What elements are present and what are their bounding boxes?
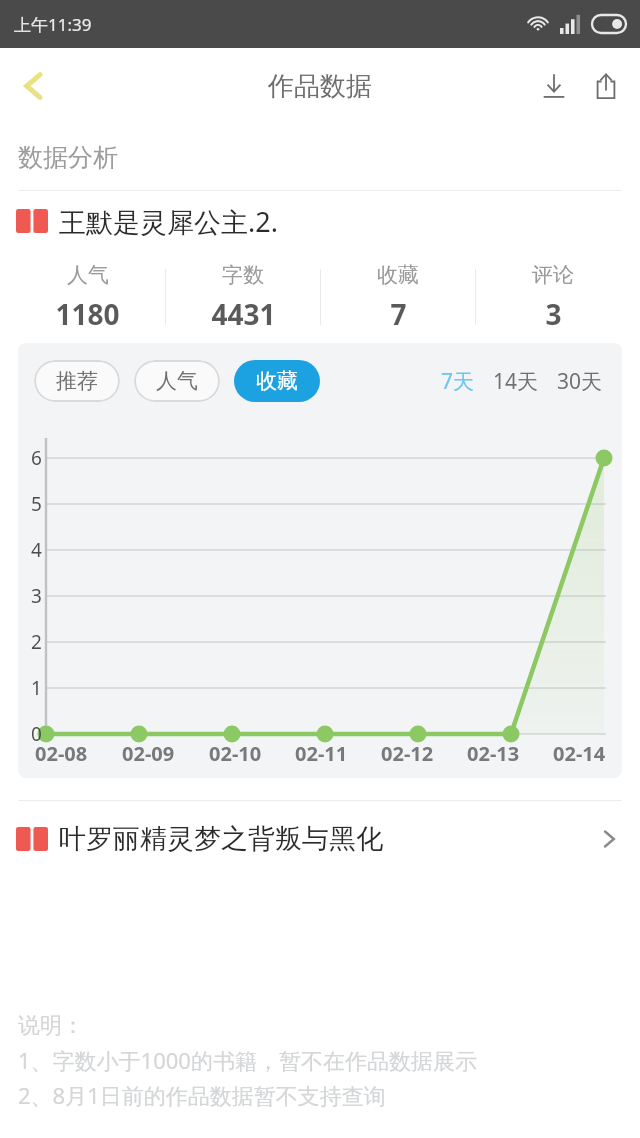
staticText: 评论	[532, 262, 574, 288]
staticText: 3	[545, 295, 562, 333]
button[interactable]: 推荐	[34, 360, 120, 402]
staticText: 3	[31, 583, 42, 609]
button[interactable]: Download	[528, 60, 580, 112]
button[interactable]: 王默是灵犀公主.2.	[0, 191, 640, 251]
staticText: 收藏	[256, 368, 298, 394]
staticText: 02-14	[553, 740, 606, 767]
staticText: 02-08	[35, 740, 88, 767]
button[interactable]: 叶罗丽精灵梦之背叛与黑化	[0, 801, 640, 877]
staticText: 02-10	[209, 740, 262, 767]
staticText: 02-13	[467, 740, 520, 767]
button[interactable]: 字数	[166, 262, 320, 333]
staticText: 4	[31, 537, 42, 563]
button[interactable]: Back	[6, 58, 62, 114]
staticText: 说明：	[18, 1012, 84, 1040]
staticText: 0	[31, 721, 42, 747]
staticText: 数据分析	[18, 142, 118, 173]
staticText: 1、字数小于1000的书籍，暂不在作品数据展示	[18, 1045, 477, 1075]
button[interactable]: 收藏	[234, 360, 320, 402]
staticText: 4431	[211, 295, 276, 333]
staticText: 7	[390, 295, 407, 333]
staticText: 14天	[493, 367, 539, 396]
button[interactable]: 人气	[134, 360, 220, 402]
staticText: 2、8月1日前的作品数据暂不支持查询	[18, 1080, 386, 1110]
staticText: 6	[31, 445, 42, 471]
staticText: 上午11:39	[14, 13, 92, 36]
button[interactable]: 14天	[490, 367, 542, 396]
staticText: 5	[31, 491, 42, 517]
staticText: 收藏	[377, 262, 419, 288]
button[interactable]: 30天	[554, 367, 606, 396]
button[interactable]: 7天	[438, 367, 478, 396]
staticText: 1	[31, 675, 42, 701]
button[interactable]: 评论	[476, 262, 630, 333]
staticText: 人气	[67, 262, 109, 288]
button[interactable]: 收藏	[321, 262, 475, 333]
staticText: 1180	[55, 295, 120, 333]
staticText: 人气	[156, 368, 198, 394]
staticText: 02-12	[381, 740, 434, 767]
staticText: 30天	[557, 367, 603, 396]
staticText: 王默是灵犀公主.2.	[59, 203, 278, 240]
staticText: 2	[31, 629, 42, 655]
staticText: 7天	[441, 367, 475, 396]
staticText: 字数	[222, 262, 264, 288]
staticText: 叶罗丽精灵梦之背叛与黑化	[59, 822, 383, 856]
staticText: 02-09	[122, 740, 175, 767]
staticText: 推荐	[56, 368, 98, 394]
button[interactable]: 人气	[10, 262, 165, 333]
button[interactable]: Share	[580, 60, 632, 112]
staticText: 作品数据	[268, 70, 372, 103]
staticText: 02-11	[295, 740, 348, 767]
